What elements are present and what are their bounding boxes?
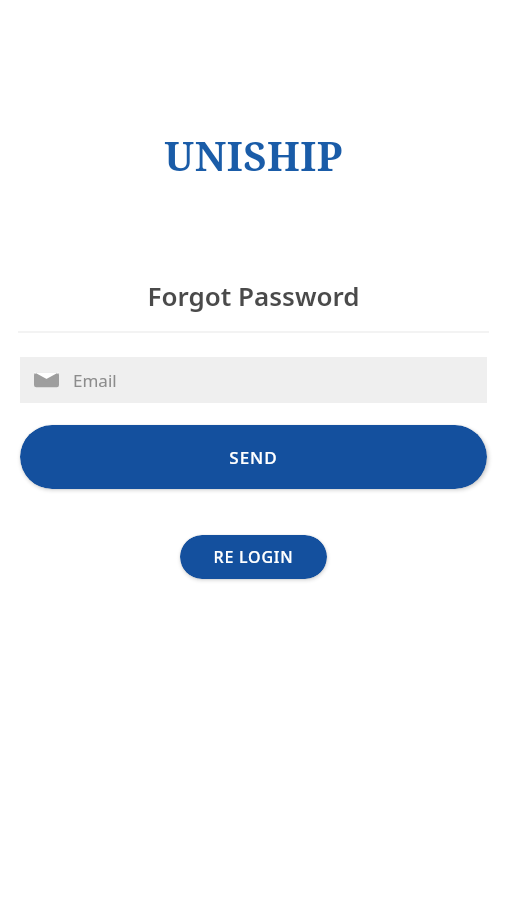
staticText: RE LOGIN — [213, 546, 294, 568]
button[interactable]: Email — [20, 357, 487, 403]
staticText: SEND — [229, 446, 278, 469]
staticText: Email — [73, 369, 117, 392]
button[interactable]: SEND — [20, 425, 487, 489]
staticText: UNISHIP — [164, 128, 343, 182]
staticText: Forgot Password — [147, 278, 360, 313]
button[interactable]: RE LOGIN — [180, 535, 327, 579]
